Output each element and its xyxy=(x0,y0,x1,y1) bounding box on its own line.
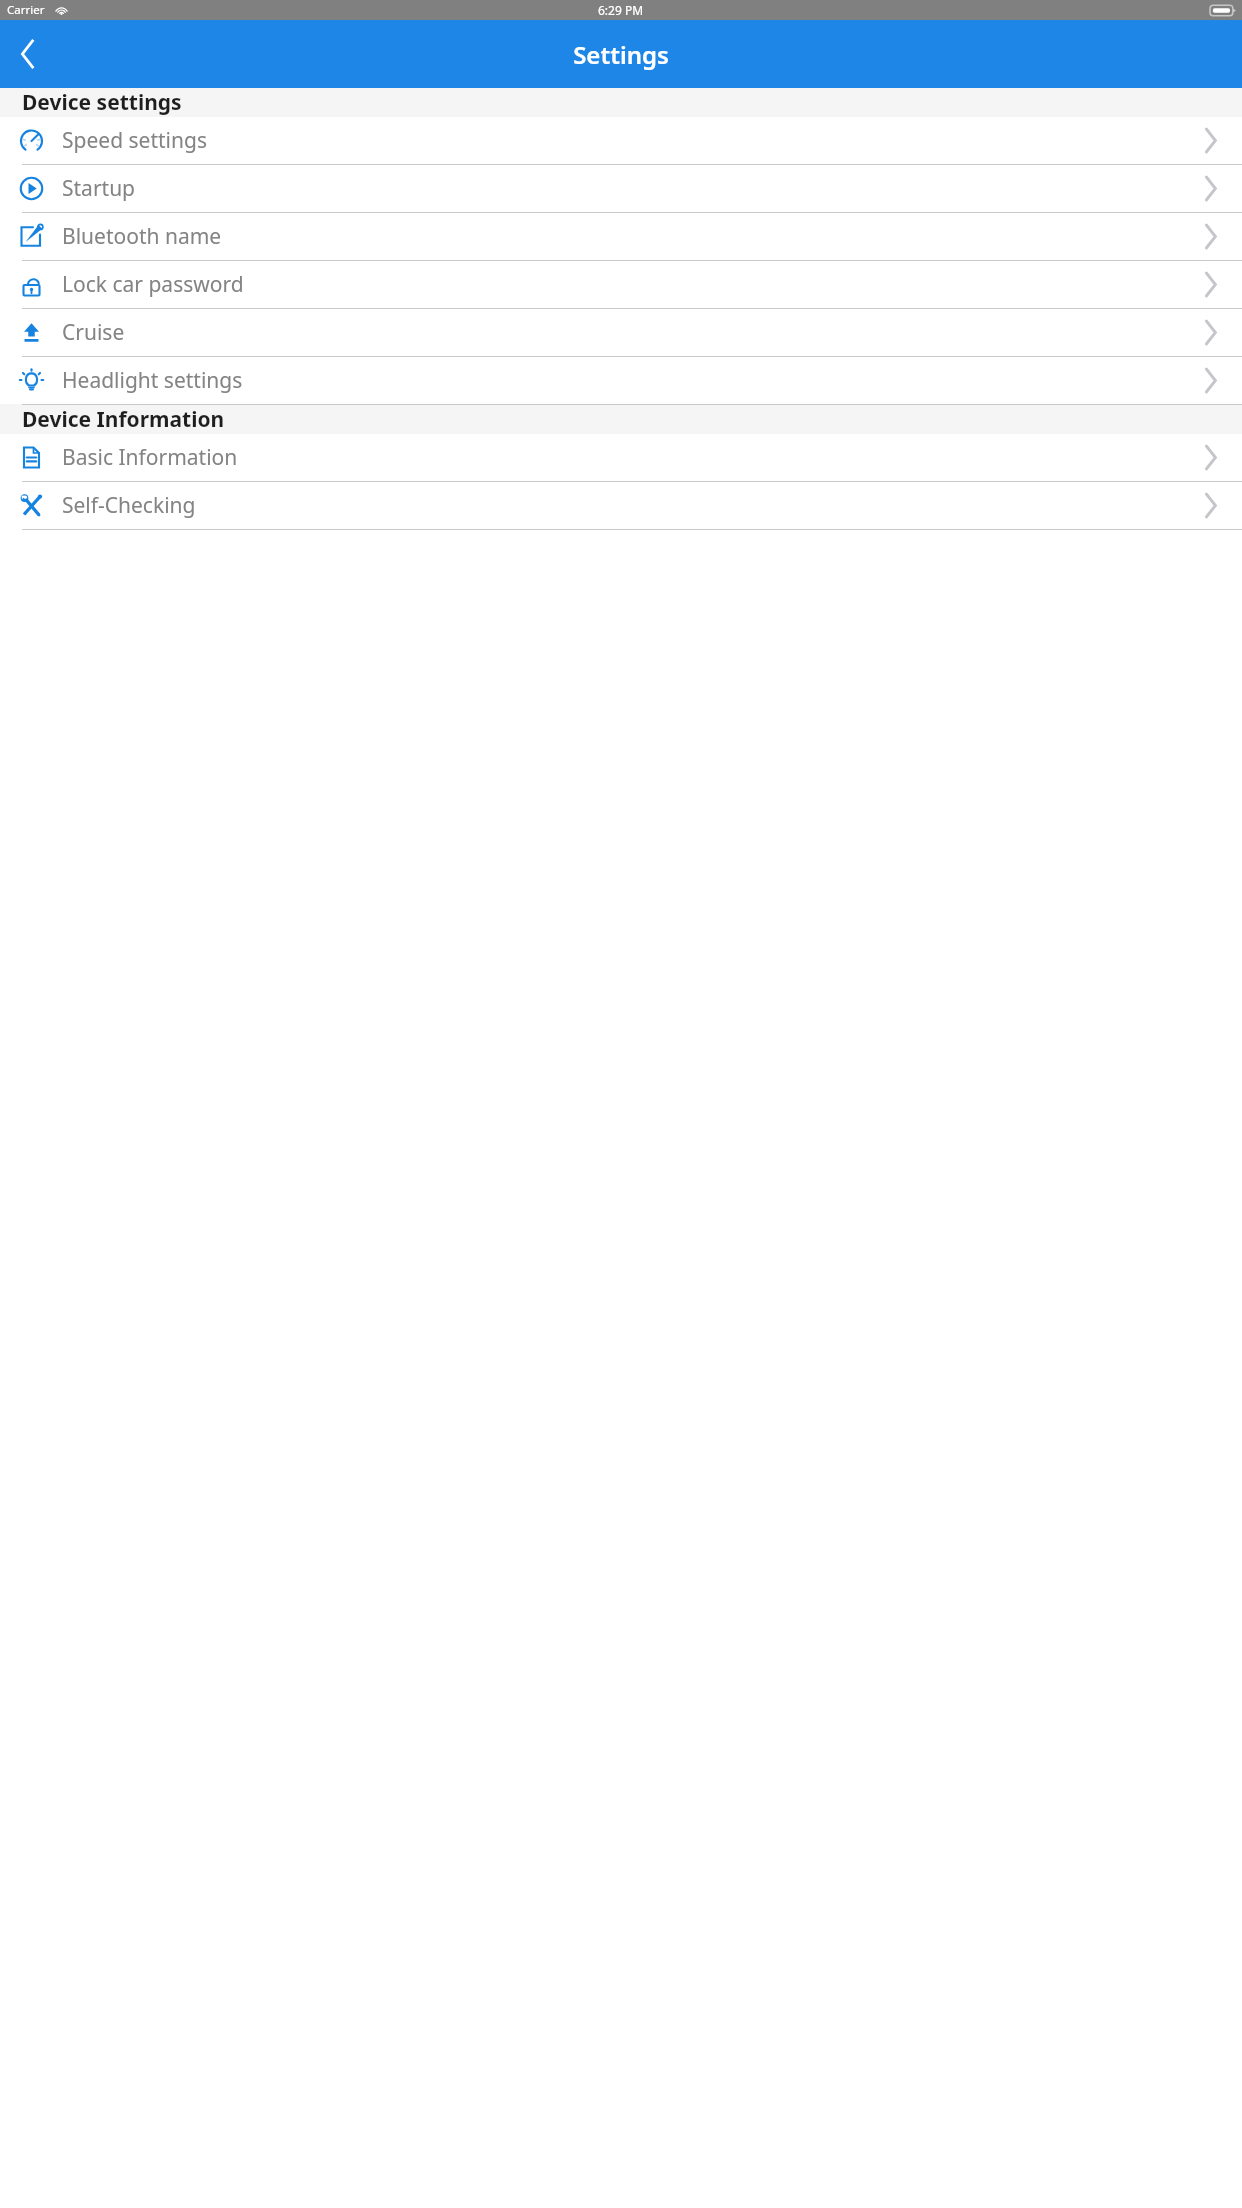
button[interactable]: Self-Checking xyxy=(0,482,1242,529)
button[interactable]: Cruise xyxy=(0,309,1242,356)
staticText: Basic Information xyxy=(62,443,238,472)
staticText: Bluetooth name xyxy=(62,222,222,251)
staticText: Speed settings xyxy=(62,126,207,155)
staticText: Device Information xyxy=(22,405,225,433)
button[interactable]: Startup xyxy=(0,165,1242,212)
button[interactable]: Back xyxy=(0,26,56,82)
staticText: Carrier xyxy=(7,2,45,18)
button[interactable]: Basic Information xyxy=(0,434,1242,481)
staticText: Settings xyxy=(573,38,669,71)
staticText: Cruise xyxy=(62,318,125,347)
staticText: Lock car password xyxy=(62,270,244,299)
button[interactable]: Speed settings xyxy=(0,117,1242,164)
button[interactable]: Lock car password xyxy=(0,261,1242,308)
staticText: Startup xyxy=(62,174,136,203)
button[interactable]: Headlight settings xyxy=(0,357,1242,404)
staticText: Self-Checking xyxy=(62,491,196,520)
staticText: Headlight settings xyxy=(62,366,243,395)
button[interactable]: Bluetooth name xyxy=(0,213,1242,260)
staticText: Device settings xyxy=(22,88,182,116)
staticText: 6:29 PM xyxy=(598,2,644,18)
